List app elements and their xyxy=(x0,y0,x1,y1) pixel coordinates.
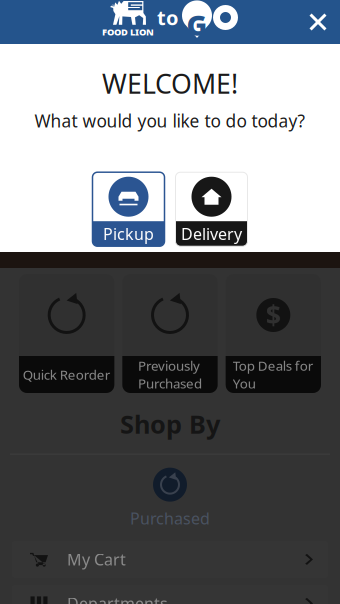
button[interactable]: My Cart xyxy=(12,541,328,578)
staticText: FOOD LION xyxy=(102,26,154,38)
button[interactable]: Close xyxy=(296,0,340,44)
staticText: Shop By xyxy=(120,407,220,441)
staticText: to xyxy=(157,4,179,31)
button[interactable]: Quick Reorder xyxy=(19,274,114,393)
staticText: My Cart xyxy=(67,549,126,570)
staticText: Top Deals for You xyxy=(233,357,314,392)
staticText: Delivery xyxy=(181,223,242,244)
staticText: $ xyxy=(266,297,281,333)
button[interactable]: Previously Purchased xyxy=(122,274,218,393)
staticText: G xyxy=(186,6,207,44)
button[interactable]: Pickup xyxy=(92,172,164,246)
staticText: Quick Reorder xyxy=(23,366,111,383)
staticText: Pickup xyxy=(103,223,154,244)
button[interactable]: Departments xyxy=(12,585,328,604)
staticText: Departments xyxy=(67,593,168,604)
staticText: Previously Purchased xyxy=(138,357,202,392)
staticText: WELCOME! xyxy=(102,66,238,101)
button[interactable]: $ xyxy=(226,274,321,393)
button[interactable]: Delivery xyxy=(175,172,247,246)
staticText: Purchased xyxy=(130,508,210,529)
staticText: What would you like to do today? xyxy=(34,109,305,132)
